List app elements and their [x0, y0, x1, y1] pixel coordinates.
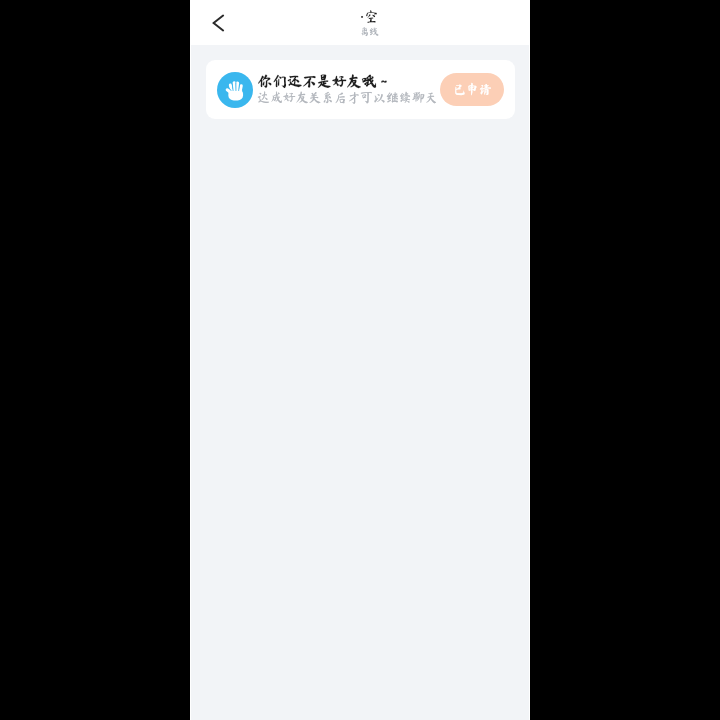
staticText: 你们还不是好友哦～	[257, 74, 392, 89]
button[interactable]: Back	[204, 10, 230, 36]
staticText: 已申请	[453, 83, 492, 96]
button[interactable]: 已申请	[440, 73, 504, 106]
staticText: ·空	[360, 6, 380, 26]
staticText: 达成好友关系后才可以继续聊天	[257, 91, 438, 104]
staticText: 离线	[360, 27, 380, 36]
button[interactable]: 你们还不是好友哦～	[206, 60, 515, 119]
